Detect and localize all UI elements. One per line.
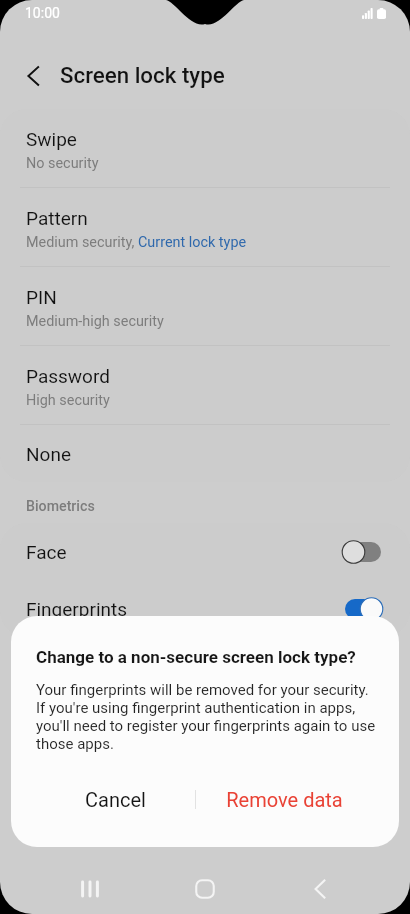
button[interactable]: Pattern [0,188,410,266]
staticText: Fingerprints [26,598,128,620]
button[interactable]: Password [0,346,410,424]
button[interactable]: Cancel [11,773,195,825]
staticText: Screen lock type [60,62,225,88]
staticText: Cancel [85,788,146,811]
button[interactable]: Home [177,866,233,912]
staticText: Medium-high security [26,313,164,330]
staticText: Change to a non-secure screen lock type? [36,647,356,667]
staticText: 10:00 [25,5,60,21]
button[interactable]: None [0,425,410,482]
staticText: Medium security, Current lock type [26,234,247,251]
button[interactable]: Navigate up [12,55,54,97]
staticText: Pattern [26,207,88,229]
button[interactable]: Fingerprints [0,580,410,637]
button[interactable]: Swipe [0,109,410,187]
button[interactable]: PIN [0,267,410,345]
staticText: Remove data [226,788,343,811]
staticText: Face [26,541,67,563]
staticText: Biometrics [26,498,95,515]
staticText: Your fingerprints will be removed for yo… [36,681,379,753]
staticText: No security [26,155,99,172]
staticText: Password [26,365,110,387]
button[interactable]: Back [292,866,348,912]
button[interactable]: Remove data [196,773,399,825]
button[interactable]: Face [0,523,410,580]
staticText: PIN [26,286,57,308]
staticText: High security [26,392,110,409]
staticText: None [26,443,71,465]
button[interactable]: Recent apps [62,866,118,912]
staticText: Swipe [26,128,77,150]
